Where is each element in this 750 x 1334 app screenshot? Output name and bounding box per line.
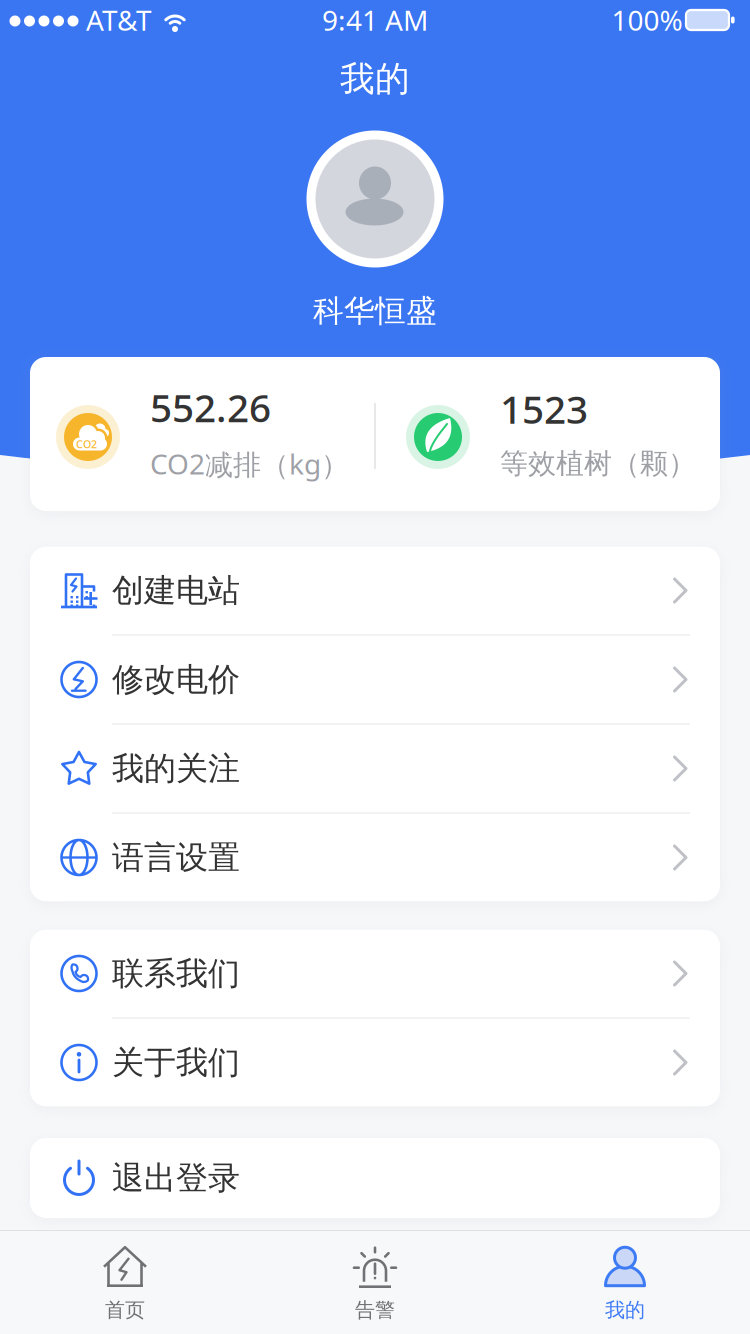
staticText: 创建电站 [112, 571, 240, 610]
staticText: 联系我们 [112, 954, 240, 993]
staticText: 100% [611, 1, 682, 39]
button[interactable]: 修改电价 [30, 636, 720, 723]
button[interactable]: 告警 [250, 1232, 500, 1334]
staticText: 语言设置 [112, 838, 240, 877]
staticText: 首页 [105, 1298, 145, 1322]
staticText: CO2 [76, 437, 97, 451]
staticText: 关于我们 [112, 1043, 240, 1082]
staticText: 等效植树（颗） [500, 446, 696, 481]
button[interactable]: 退出登录 [30, 1138, 720, 1218]
staticText: 科华恒盛 [313, 292, 437, 330]
staticText: 9:41 AM [322, 1, 428, 39]
staticText: 552.26 [150, 382, 271, 433]
staticText: AT&T [86, 1, 152, 39]
staticText: 告警 [355, 1298, 395, 1322]
staticText: 修改电价 [112, 660, 240, 699]
button[interactable]: 首页 [0, 1232, 250, 1334]
staticText: CO2减排（kg） [150, 445, 349, 482]
staticText: 退出登录 [112, 1158, 240, 1198]
button[interactable]: 语言设置 [30, 814, 720, 901]
button[interactable]: 我的 [500, 1232, 750, 1334]
button[interactable]: 我的关注 [30, 725, 720, 812]
button[interactable]: 关于我们 [30, 1019, 720, 1106]
staticText: 我的 [605, 1298, 645, 1322]
staticText: 我的 [340, 58, 410, 100]
button[interactable]: 联系我们 [30, 930, 720, 1017]
button[interactable]: 创建电站 [30, 547, 720, 634]
staticText: 1523 [500, 383, 588, 434]
staticText: 我的关注 [112, 749, 240, 788]
